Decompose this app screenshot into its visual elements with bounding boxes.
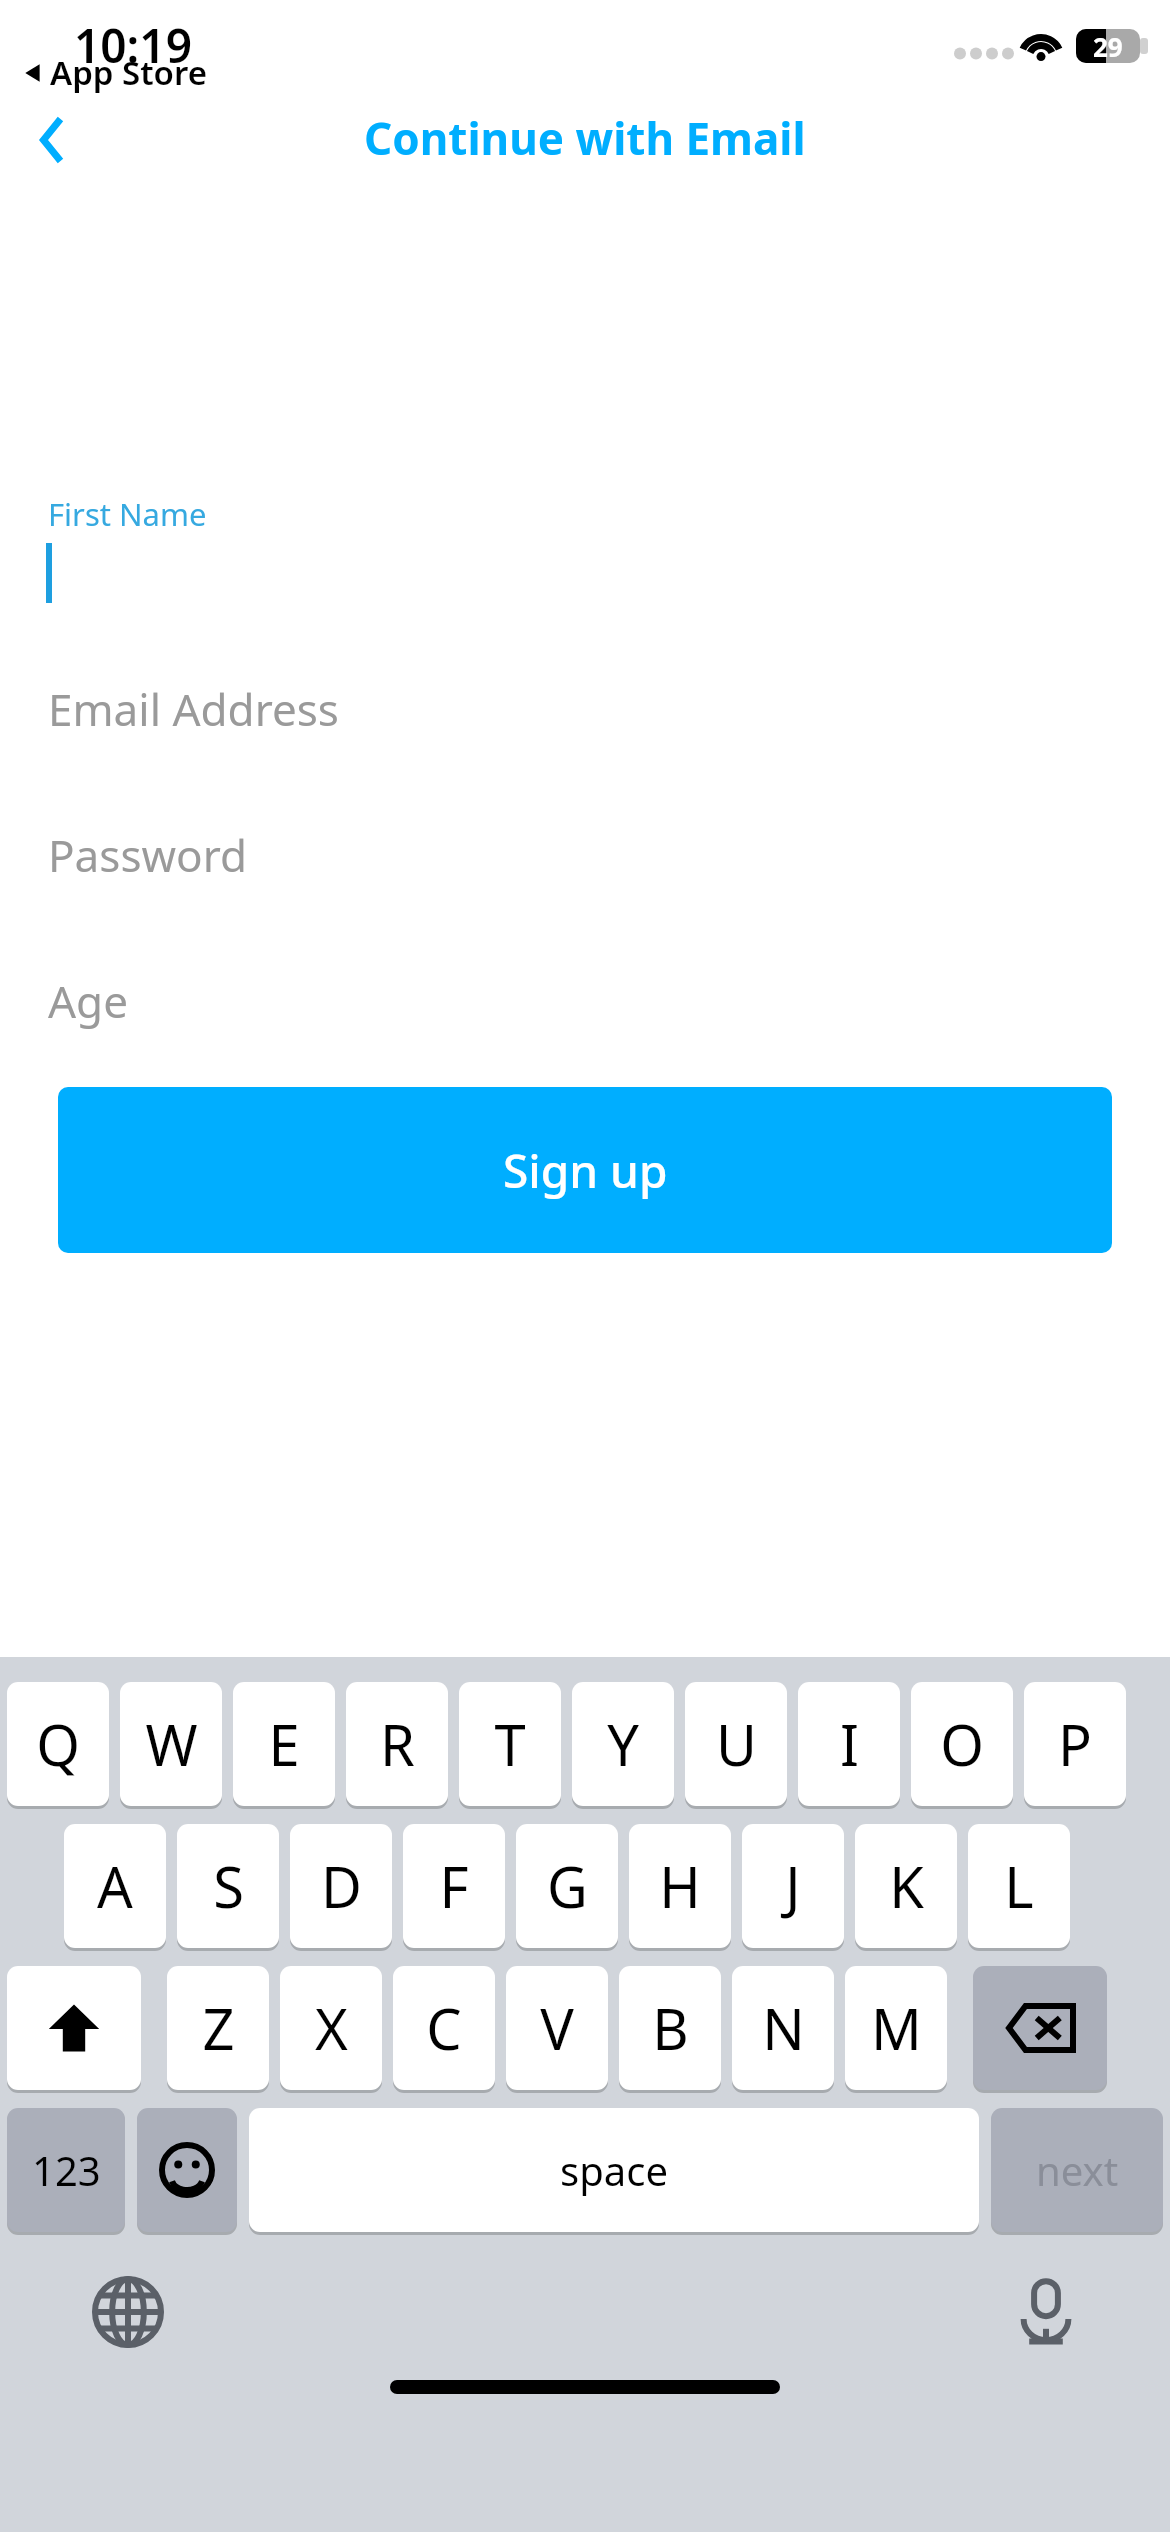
button[interactable]: G <box>516 1824 618 1948</box>
staticText: G <box>547 1848 588 1924</box>
staticText: T <box>494 1706 526 1782</box>
button[interactable]: O <box>911 1682 1013 1806</box>
button[interactable]: K <box>855 1824 957 1948</box>
staticText: O <box>940 1706 984 1782</box>
button[interactable]: Change keyboard language <box>80 2264 176 2360</box>
staticText: S <box>213 1848 244 1924</box>
button[interactable]: P <box>1024 1682 1126 1806</box>
button[interactable]: Emoji <box>137 2108 237 2232</box>
button[interactable]: Backspace <box>973 1966 1107 2090</box>
staticText: W <box>145 1706 198 1782</box>
staticText: J <box>785 1848 801 1924</box>
staticText: H <box>659 1848 701 1924</box>
staticText: Continue with Email <box>364 108 806 168</box>
staticText: R <box>380 1706 415 1782</box>
button[interactable]: D <box>290 1824 392 1948</box>
staticText: First Name <box>48 493 207 535</box>
button[interactable]: H <box>629 1824 731 1948</box>
staticText: Q <box>36 1706 80 1782</box>
staticText: Sign up <box>503 1139 668 1202</box>
button[interactable]: I <box>798 1682 900 1806</box>
button[interactable]: Shift <box>7 1966 141 2090</box>
staticText: Y <box>607 1706 639 1782</box>
button[interactable]: Password <box>0 825 1170 885</box>
button[interactable]: Next <box>991 2108 1163 2232</box>
staticText: P <box>1058 1706 1092 1782</box>
staticText: V <box>540 1990 574 2066</box>
staticText: U <box>716 1706 757 1782</box>
button[interactable]: J <box>742 1824 844 1948</box>
staticText: F <box>439 1848 469 1924</box>
button[interactable]: B <box>619 1966 721 2090</box>
staticText: Password <box>48 825 248 885</box>
staticText: K <box>889 1848 924 1924</box>
button[interactable]: L <box>968 1824 1070 1948</box>
staticText: M <box>871 1990 922 2066</box>
staticText: 123 <box>32 2143 101 2197</box>
button[interactable]: E <box>233 1682 335 1806</box>
staticText: space <box>560 2143 668 2197</box>
staticText: next <box>1036 2143 1119 2197</box>
staticText: Z <box>202 1990 235 2066</box>
button[interactable]: Back <box>18 95 88 185</box>
staticText: E <box>268 1706 300 1782</box>
button[interactable]: Y <box>572 1682 674 1806</box>
staticText: App Store <box>50 50 207 95</box>
button[interactable]: W <box>120 1682 222 1806</box>
button[interactable]: App Store <box>22 50 207 95</box>
button[interactable]: Email Address <box>0 679 1170 739</box>
button[interactable]: Sign up <box>58 1087 1112 1253</box>
staticText: Age <box>48 971 128 1031</box>
button[interactable]: X <box>280 1966 382 2090</box>
button[interactable]: T <box>459 1682 561 1806</box>
staticText: D <box>321 1848 362 1924</box>
button[interactable]: M <box>845 1966 947 2090</box>
button[interactable]: Z <box>167 1966 269 2090</box>
staticText: 29 <box>1093 29 1123 63</box>
staticText: C <box>426 1990 462 2066</box>
button[interactable]: Numbers <box>7 2108 125 2232</box>
button[interactable]: A <box>64 1824 166 1948</box>
staticText: A <box>97 1848 133 1924</box>
staticText: L <box>1004 1848 1034 1924</box>
button[interactable]: Dictation <box>998 2264 1094 2360</box>
button[interactable]: U <box>685 1682 787 1806</box>
button[interactable]: V <box>506 1966 608 2090</box>
staticText: B <box>652 1990 689 2066</box>
button[interactable]: Q <box>7 1682 109 1806</box>
button[interactable]: First Name <box>0 493 1170 633</box>
button[interactable]: space <box>249 2108 979 2232</box>
button[interactable]: S <box>177 1824 279 1948</box>
button[interactable]: F <box>403 1824 505 1948</box>
staticText: N <box>762 1990 805 2066</box>
staticText: Email Address <box>48 679 339 739</box>
button[interactable]: C <box>393 1966 495 2090</box>
button[interactable]: R <box>346 1682 448 1806</box>
staticText: X <box>315 1990 348 2066</box>
button[interactable]: N <box>732 1966 834 2090</box>
staticText: 10:19 <box>74 14 192 77</box>
button[interactable]: Age <box>0 971 1170 1031</box>
staticText: I <box>840 1706 859 1782</box>
